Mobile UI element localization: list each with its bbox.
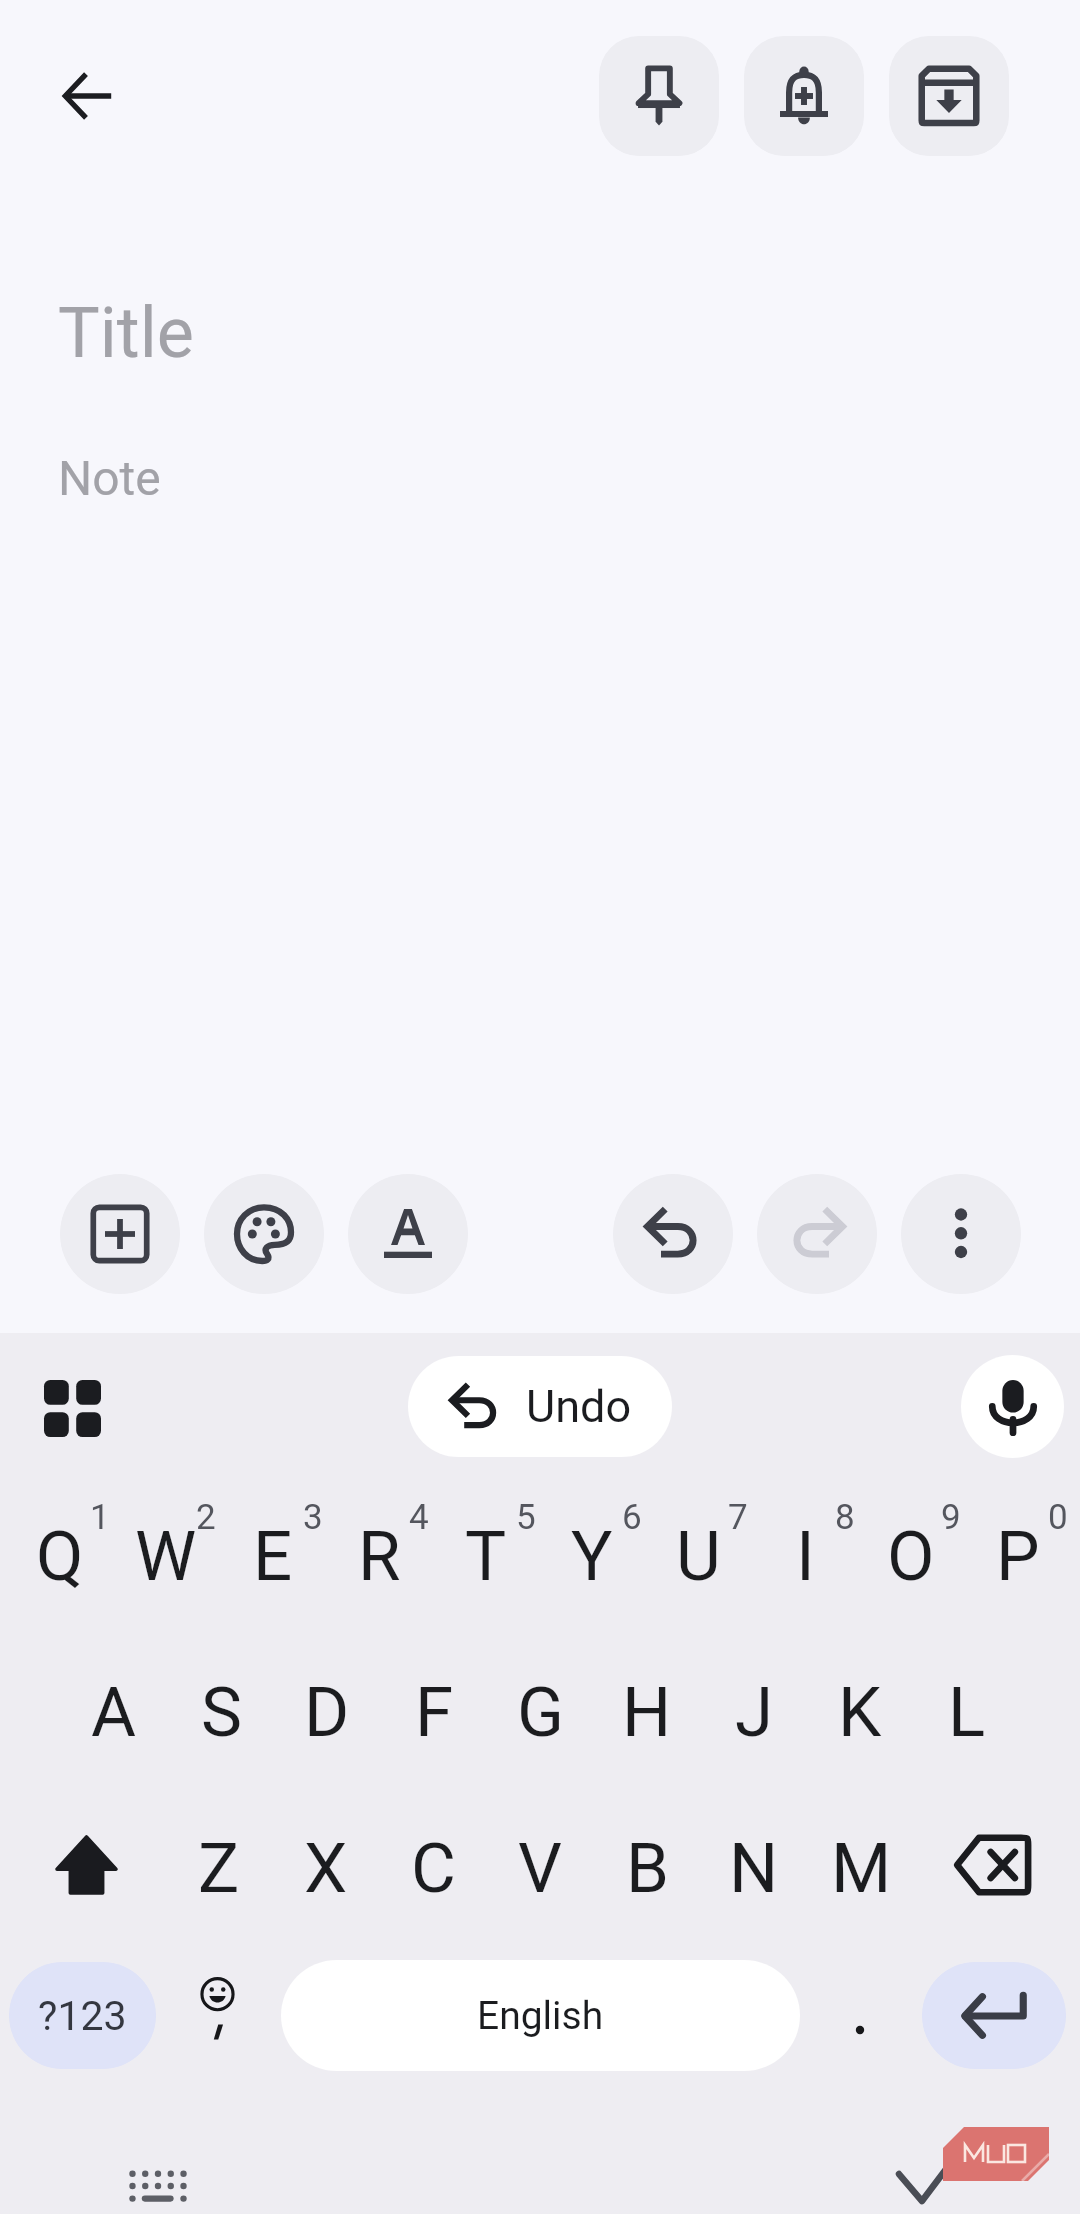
staticText: 3 <box>303 1497 323 1538</box>
staticText: U <box>676 1516 721 1597</box>
button[interactable]: S <box>168 1632 274 1792</box>
staticText: 9 <box>941 1497 961 1538</box>
button[interactable]: Reminder <box>744 36 864 156</box>
button[interactable]: E <box>220 1476 326 1636</box>
staticText: 5 <box>516 1497 536 1538</box>
staticText: E <box>253 1516 293 1597</box>
staticText: M <box>831 1828 892 1909</box>
staticText: 1 <box>90 1497 110 1538</box>
staticText: K <box>838 1672 882 1753</box>
button[interactable]: Shift <box>3 1785 169 1945</box>
button[interactable]: U <box>645 1476 751 1636</box>
button[interactable]: A <box>61 1632 167 1792</box>
button[interactable]: T <box>433 1476 539 1636</box>
staticText: Q <box>36 1516 84 1597</box>
staticText: English <box>477 1993 604 2039</box>
button[interactable]: N <box>701 1788 807 1948</box>
staticText: Note <box>58 450 161 506</box>
button[interactable]: Colour <box>204 1174 324 1294</box>
staticText: 8 <box>835 1497 855 1538</box>
button[interactable]: L <box>914 1632 1020 1792</box>
staticText: 6 <box>622 1497 642 1538</box>
button[interactable]: Add <box>60 1174 180 1294</box>
staticText: F <box>415 1672 454 1753</box>
staticText: V <box>518 1828 562 1909</box>
staticText: 0 <box>1048 1497 1068 1538</box>
button[interactable]: C <box>380 1788 486 1948</box>
staticText: A <box>91 1672 137 1753</box>
staticText: X <box>304 1828 348 1909</box>
staticText: O <box>887 1516 935 1597</box>
button[interactable]: Archive <box>889 36 1009 156</box>
staticText: R <box>358 1516 401 1597</box>
staticText: H <box>622 1672 672 1753</box>
staticText: J <box>735 1672 774 1753</box>
button[interactable]: G <box>487 1632 593 1792</box>
staticText: P <box>996 1516 1040 1597</box>
button[interactable]: Note <box>58 450 1080 520</box>
button[interactable]: Back <box>46 56 126 136</box>
staticText: Z <box>198 1828 240 1909</box>
button[interactable]: Z <box>166 1788 272 1948</box>
button[interactable]: Clipboard <box>27 1363 117 1453</box>
staticText: D <box>304 1672 350 1753</box>
button[interactable]: X <box>273 1788 379 1948</box>
button[interactable]: Pin <box>599 36 719 156</box>
button[interactable]: Period <box>820 1962 900 2069</box>
button[interactable]: R <box>326 1476 432 1636</box>
button[interactable]: B <box>594 1788 700 1948</box>
staticText: Undo <box>526 1380 632 1433</box>
staticText: L <box>948 1672 986 1753</box>
staticText: I <box>796 1516 815 1597</box>
button[interactable]: Title <box>58 292 1080 388</box>
button[interactable]: Undo <box>408 1356 672 1457</box>
button[interactable]: F <box>381 1632 487 1792</box>
button[interactable]: M <box>808 1788 914 1948</box>
button[interactable]: J <box>701 1632 807 1792</box>
button[interactable]: More options <box>901 1174 1021 1294</box>
button[interactable]: W <box>113 1476 219 1636</box>
button[interactable]: Redo <box>757 1174 877 1294</box>
staticText: N <box>729 1828 779 1909</box>
staticText: G <box>517 1672 564 1753</box>
button[interactable]: Enter <box>922 1962 1066 2069</box>
button[interactable]: Emoji <box>177 1962 257 2069</box>
button[interactable]: K <box>807 1632 913 1792</box>
button[interactable]: Q <box>7 1476 113 1636</box>
button[interactable]: Backspace <box>910 1785 1075 1945</box>
staticText: B <box>626 1828 669 1909</box>
button[interactable]: H <box>594 1632 700 1792</box>
staticText: Y <box>571 1516 613 1597</box>
button[interactable]: Undo <box>613 1174 733 1294</box>
button[interactable]: Y <box>539 1476 645 1636</box>
button[interactable]: D <box>274 1632 380 1792</box>
button[interactable]: P <box>965 1476 1071 1636</box>
staticText: C <box>411 1828 456 1909</box>
staticText: S <box>201 1672 242 1753</box>
button[interactable]: O <box>858 1476 964 1636</box>
button[interactable]: Switch keyboard <box>118 2146 198 2214</box>
button[interactable]: ?123 <box>9 1962 156 2069</box>
staticText: W <box>135 1516 197 1597</box>
button[interactable]: Confirm <box>880 2140 980 2214</box>
staticText: 7 <box>728 1497 748 1538</box>
staticText: 4 <box>409 1497 429 1538</box>
button[interactable]: English <box>281 1960 800 2071</box>
button[interactable]: Formatting <box>348 1174 468 1294</box>
button[interactable]: Voice input <box>961 1355 1064 1458</box>
staticText: T <box>465 1516 507 1597</box>
button[interactable]: V <box>487 1788 593 1948</box>
button[interactable]: I <box>752 1476 858 1636</box>
staticText: Title <box>58 292 194 374</box>
staticText: ?123 <box>38 1992 127 2040</box>
staticText: 2 <box>196 1497 216 1538</box>
